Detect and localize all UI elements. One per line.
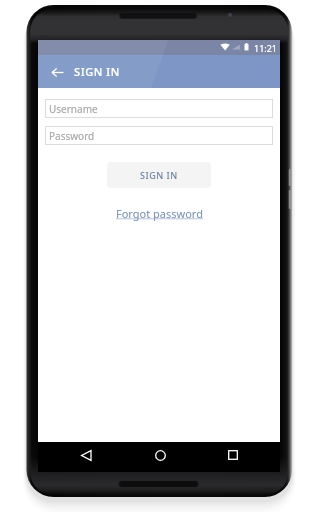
button[interactable]: Back bbox=[46, 61, 68, 83]
button[interactable]: Recents bbox=[219, 441, 247, 469]
button[interactable]: Password bbox=[45, 126, 273, 145]
button[interactable]: Back bbox=[72, 441, 100, 469]
button[interactable]: Forgot password bbox=[112, 202, 207, 225]
button[interactable]: Home bbox=[146, 441, 174, 469]
staticText: Forgot password bbox=[116, 206, 203, 221]
staticText: Username bbox=[49, 102, 98, 116]
staticText: Password bbox=[49, 129, 95, 143]
staticText: SIGN IN bbox=[74, 64, 120, 79]
staticText: SIGN IN bbox=[140, 169, 178, 181]
button[interactable]: Username bbox=[45, 99, 273, 118]
button[interactable]: SIGN IN bbox=[107, 162, 211, 188]
staticText: 11:21 bbox=[254, 42, 278, 54]
